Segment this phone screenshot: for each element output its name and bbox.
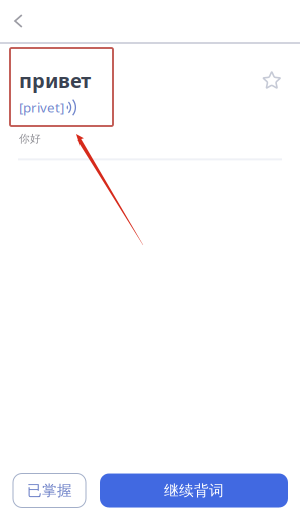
button[interactable]: Play pronunciation bbox=[64, 101, 78, 113]
button[interactable]: 继续背词 bbox=[100, 473, 288, 507]
staticText: [privet] bbox=[19, 99, 64, 116]
button[interactable]: 已掌握 bbox=[13, 473, 86, 507]
staticText: 你好 bbox=[19, 132, 41, 145]
staticText: 已掌握 bbox=[27, 481, 72, 499]
button[interactable]: Favourite bbox=[262, 67, 281, 89]
staticText: 继续背词 bbox=[164, 481, 224, 499]
button[interactable]: Back bbox=[0, 0, 40, 42]
staticText: привет bbox=[19, 67, 91, 94]
